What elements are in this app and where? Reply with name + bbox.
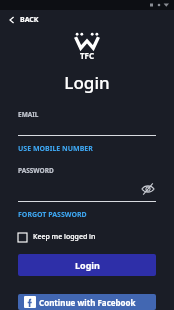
- staticText: Login: [0, 71, 174, 94]
- staticText: Continue with Facebook: [39, 297, 136, 308]
- button[interactable]: USE MOBILE NUMBER: [18, 144, 93, 154]
- button[interactable]: BACK: [0, 10, 49, 30]
- button[interactable]: Login: [18, 254, 156, 276]
- staticText: TFC: [80, 50, 95, 61]
- staticText: Login: [75, 259, 100, 271]
- staticText: PASSWORD: [18, 166, 54, 175]
- button[interactable]: Keep me logged in: [18, 232, 96, 242]
- staticText: Keep me logged in: [33, 232, 96, 242]
- button[interactable]: Continue with Facebook: [18, 294, 156, 310]
- button[interactable]: Show password: [140, 181, 156, 197]
- staticText: EMAIL: [18, 110, 39, 119]
- staticText: BACK: [20, 15, 39, 25]
- button[interactable]: FORGOT PASSWORD: [18, 210, 87, 220]
